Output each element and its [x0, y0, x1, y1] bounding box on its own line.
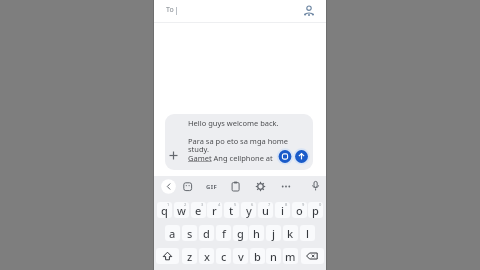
staticText: u — [262, 203, 269, 218]
staticText: m — [285, 249, 296, 264]
staticText: study. — [188, 144, 210, 154]
staticText: q — [161, 203, 168, 218]
staticText: e — [195, 203, 202, 218]
staticText: t — [229, 203, 234, 218]
staticText: p — [312, 203, 319, 218]
staticText: 3 — [201, 202, 204, 207]
staticText: Hello guys welcome back. — [188, 118, 279, 128]
staticText: Para sa po eto sa mga home — [188, 136, 289, 146]
staticText: d — [203, 226, 210, 241]
staticText: i — [281, 203, 284, 218]
staticText: g — [237, 226, 244, 241]
staticText: f — [222, 226, 226, 241]
staticText: w — [177, 203, 186, 218]
staticText: 1 — [167, 202, 170, 207]
staticText: j — [272, 226, 275, 241]
staticText: h — [253, 226, 260, 241]
staticText: 8 — [285, 202, 288, 207]
staticText: GIF — [206, 183, 218, 191]
staticText: 7 — [268, 202, 271, 207]
staticText: 6 — [251, 202, 254, 207]
staticText: o — [296, 203, 303, 218]
staticText: x — [204, 249, 210, 264]
staticText: v — [238, 249, 244, 264]
staticText: r — [212, 203, 217, 218]
staticText: 0 — [319, 202, 322, 207]
staticText: s — [187, 226, 193, 241]
staticText: c — [221, 249, 227, 264]
staticText: 4 — [218, 202, 221, 207]
staticText: Gamet Ang cellphone at — [188, 153, 273, 163]
staticText: a — [169, 226, 176, 241]
staticText: 9 — [302, 202, 305, 207]
staticText: z — [187, 249, 193, 264]
staticText: 2 — [184, 202, 187, 207]
staticText: 5 — [234, 202, 237, 207]
staticText: l — [306, 226, 309, 241]
staticText: y — [246, 203, 252, 218]
staticText: n — [270, 249, 277, 264]
staticText: b — [254, 249, 261, 264]
staticText: k — [287, 226, 294, 241]
staticText: To — [166, 5, 174, 15]
